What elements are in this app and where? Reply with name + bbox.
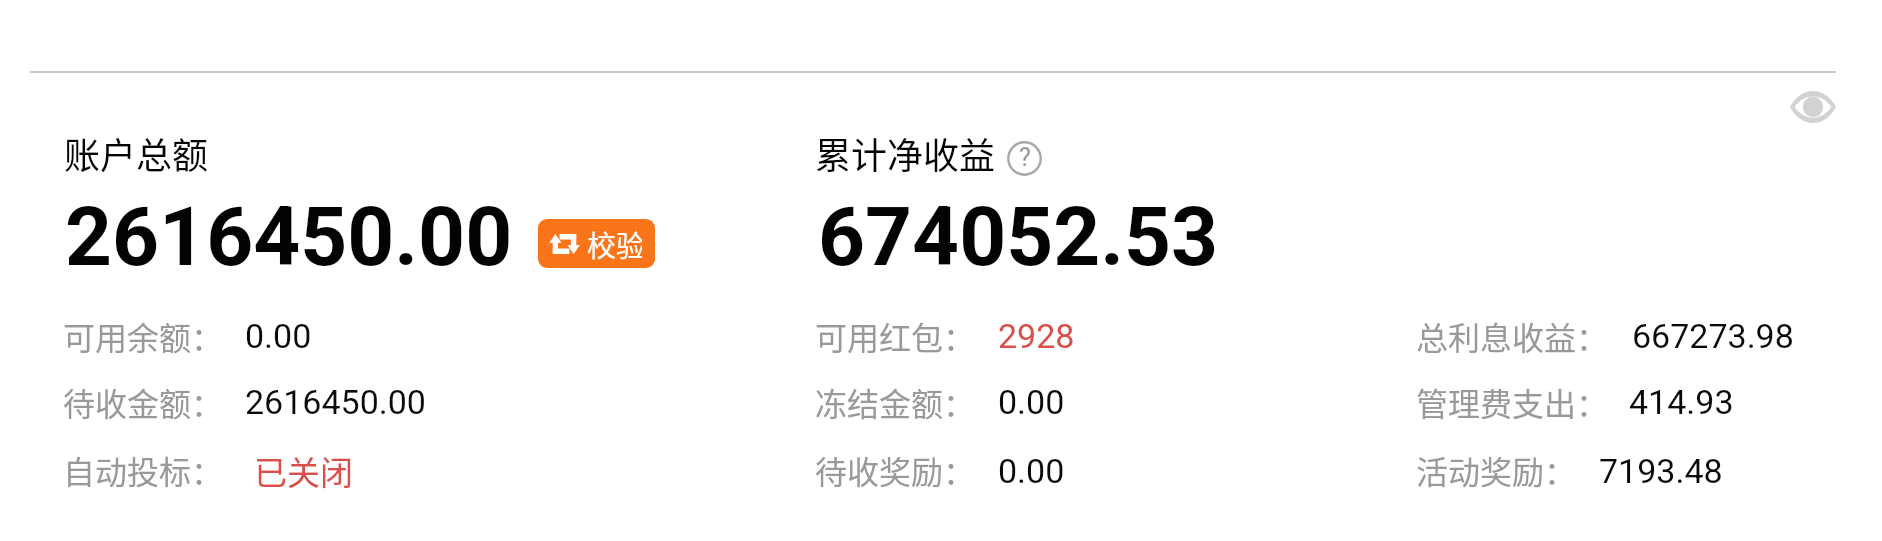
staticText: 待收金额： — [63, 379, 224, 425]
staticText: 0.00 — [998, 382, 1065, 422]
button[interactable]: 校验 — [538, 219, 655, 268]
staticText: 2928 — [998, 316, 1075, 356]
staticText: 校验 — [587, 223, 642, 265]
staticText: 活动奖励： — [1416, 447, 1577, 493]
staticText: 已关闭 — [254, 447, 353, 495]
staticText: 414.93 — [1629, 382, 1734, 422]
staticText: 674052.53 — [818, 189, 1219, 285]
staticText: 待收奖励： — [815, 447, 976, 493]
staticText: 667273.98 — [1632, 316, 1794, 356]
button[interactable]: Help — [1007, 141, 1042, 176]
staticText: 自动投标： — [63, 447, 224, 493]
staticText: 可用余额： — [63, 313, 224, 359]
staticText: 7193.48 — [1599, 451, 1723, 491]
staticText: 账户总额 — [64, 127, 209, 179]
staticText: 可用红包： — [815, 313, 976, 359]
staticText: 0.00 — [998, 451, 1065, 491]
staticText: 冻结金额： — [815, 379, 976, 425]
staticText: 2616450.00 — [65, 189, 513, 285]
button[interactable]: Toggle amount visibility — [1782, 76, 1844, 138]
staticText: 0.00 — [245, 316, 312, 356]
staticText: 2616450.00 — [245, 382, 426, 422]
staticText: 管理费支出： — [1416, 379, 1609, 425]
staticText: 累计净收益 — [815, 127, 996, 179]
staticText: ? — [1019, 143, 1031, 172]
staticText: 总利息收益： — [1416, 313, 1609, 359]
